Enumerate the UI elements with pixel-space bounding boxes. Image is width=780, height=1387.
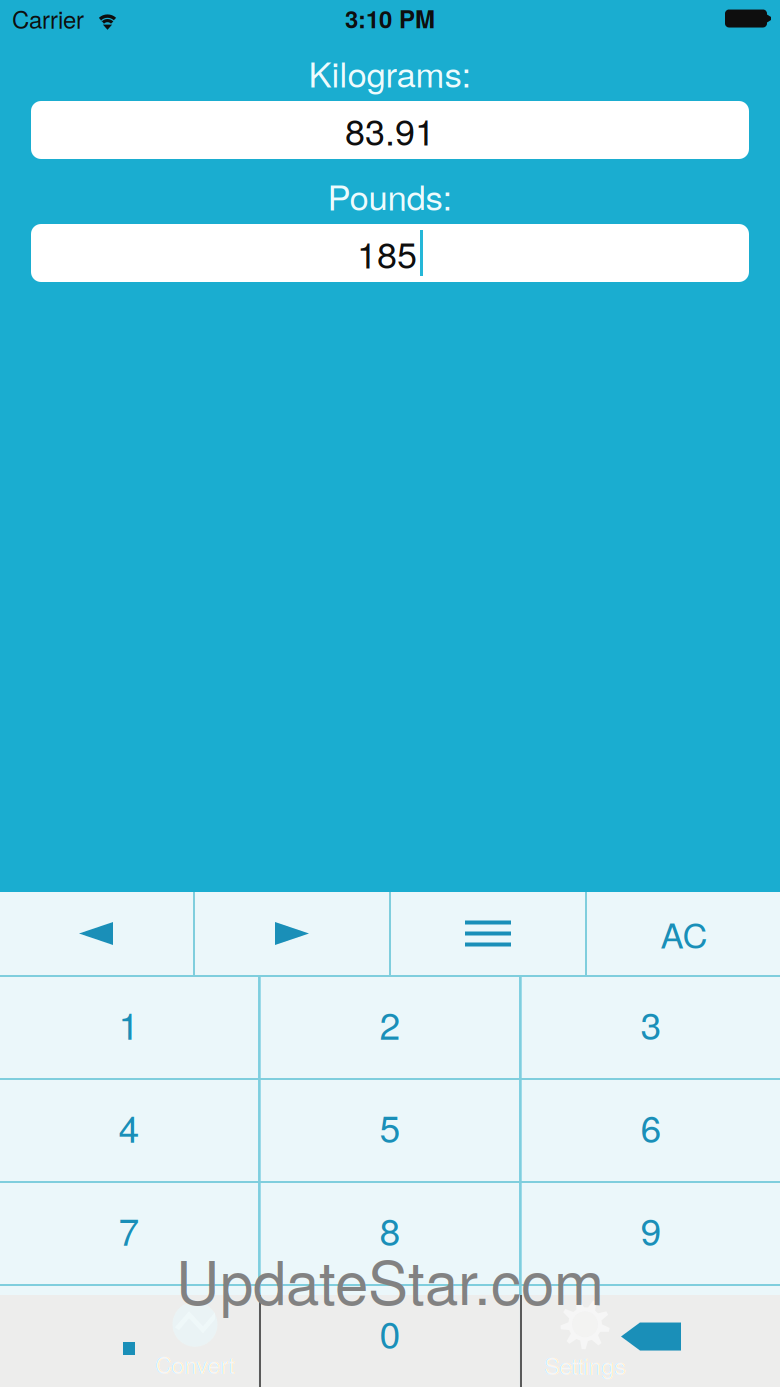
button[interactable]: Convert <box>0 1295 390 1387</box>
staticText: 185 <box>357 227 417 279</box>
staticText: 9 <box>640 1203 661 1256</box>
button[interactable]: 1 <box>0 977 258 1078</box>
button[interactable]: 5 <box>260 1080 519 1181</box>
staticText: 8 <box>379 1203 400 1256</box>
staticText: 3 <box>640 997 661 1050</box>
button[interactable]: 0 <box>260 1286 519 1387</box>
staticText: UpdateStar.com <box>176 1236 604 1322</box>
staticText: 6 <box>640 1100 661 1153</box>
button[interactable]: Backspace <box>521 1286 780 1387</box>
button[interactable]: Next field <box>195 892 389 975</box>
button[interactable]: 6 <box>521 1080 780 1181</box>
button[interactable]: Units menu <box>391 892 585 975</box>
button[interactable]: 9 <box>521 1183 780 1284</box>
button[interactable]: 7 <box>0 1183 258 1284</box>
staticText: 5 <box>379 1100 400 1153</box>
staticText: 83.91 <box>345 104 435 156</box>
button[interactable]: Previous field <box>0 892 193 975</box>
staticText: AC <box>660 909 707 958</box>
staticText: 0 <box>379 1306 400 1359</box>
button[interactable]: 4 <box>0 1080 258 1181</box>
staticText: 7 <box>118 1203 139 1256</box>
staticText: 1 <box>118 997 139 1050</box>
button[interactable]: AC <box>587 892 780 975</box>
staticText: Pounds: <box>327 171 452 220</box>
button[interactable]: Settings <box>390 1295 780 1387</box>
staticText: Settings <box>544 1349 625 1381</box>
button[interactable]: Decimal point <box>0 1286 258 1387</box>
staticText: Convert <box>155 1348 234 1380</box>
button[interactable]: 3 <box>521 977 780 1078</box>
button[interactable]: 2 <box>260 977 519 1078</box>
staticText: 4 <box>118 1100 139 1153</box>
staticText: 3:10 PM <box>345 1 435 36</box>
staticText: Carrier <box>12 1 84 36</box>
button[interactable]: 8 <box>260 1183 519 1284</box>
staticText: 0 <box>379 1306 400 1359</box>
staticText: 2 <box>379 997 400 1050</box>
staticText: Kilograms: <box>308 48 471 97</box>
